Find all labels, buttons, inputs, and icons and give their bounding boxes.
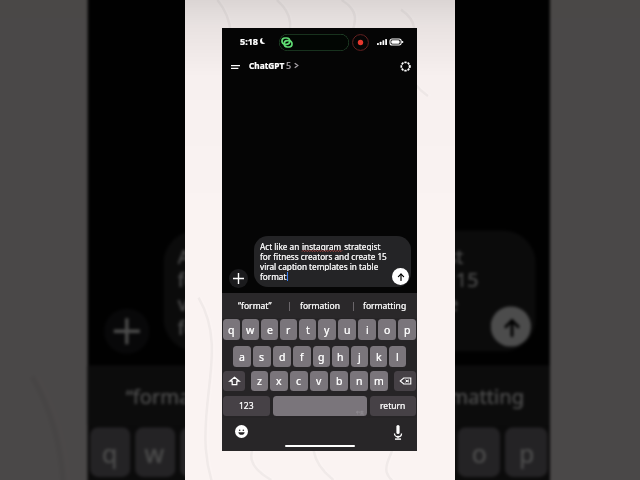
staticText: instagram bbox=[277, 242, 372, 266]
staticText: formation bbox=[273, 382, 367, 411]
button[interactable]: Menu bbox=[226, 58, 244, 76]
button[interactable]: i bbox=[358, 319, 376, 340]
button[interactable]: formatting bbox=[396, 366, 550, 425]
button[interactable]: “format” bbox=[222, 293, 287, 318]
button[interactable]: f bbox=[293, 346, 311, 367]
button[interactable]: Act like an bbox=[164, 230, 536, 351]
button[interactable]: 123 bbox=[223, 396, 270, 416]
button[interactable]: Send bbox=[491, 306, 531, 347]
staticText: formatting bbox=[363, 300, 407, 312]
staticText: formatting bbox=[422, 382, 526, 411]
staticText: 123 bbox=[239, 400, 254, 412]
staticText: q bbox=[228, 323, 235, 337]
button[interactable]: w bbox=[135, 427, 175, 477]
staticText: j bbox=[358, 350, 361, 364]
button[interactable]: o bbox=[378, 319, 396, 340]
staticText: r bbox=[286, 323, 291, 337]
staticText: q bbox=[102, 437, 118, 470]
button[interactable]: formation bbox=[242, 366, 396, 425]
staticText: m bbox=[374, 374, 384, 388]
button[interactable]: r bbox=[225, 427, 265, 477]
staticText: Act like an bbox=[260, 241, 302, 251]
button[interactable]: s bbox=[253, 346, 271, 367]
staticText: w bbox=[246, 323, 255, 337]
staticText: e bbox=[267, 323, 273, 337]
staticText: r bbox=[239, 437, 251, 470]
staticText: 中英 bbox=[356, 410, 364, 415]
button[interactable]: u bbox=[338, 319, 356, 340]
button[interactable]: o bbox=[457, 427, 500, 477]
button[interactable]: Emoji bbox=[235, 425, 248, 438]
button[interactable]: Temporary chat bbox=[396, 57, 414, 75]
button[interactable]: t bbox=[270, 427, 310, 477]
staticText: v bbox=[316, 374, 322, 388]
staticText: e bbox=[194, 437, 209, 470]
staticText: y bbox=[329, 437, 344, 470]
button[interactable]: p bbox=[398, 319, 416, 340]
button[interactable]: Delete bbox=[394, 371, 416, 391]
button[interactable]: r bbox=[280, 319, 297, 340]
button[interactable]: e bbox=[261, 319, 278, 340]
staticText: “format” bbox=[126, 382, 206, 411]
staticText: “format” bbox=[238, 300, 272, 312]
button[interactable]: h bbox=[332, 346, 349, 367]
staticText: g bbox=[318, 350, 325, 364]
button[interactable]: i bbox=[410, 427, 453, 477]
staticText: ChatGPT bbox=[249, 60, 285, 71]
button[interactable]: a bbox=[233, 346, 251, 367]
button[interactable]: y bbox=[318, 319, 336, 340]
button[interactable]: return bbox=[370, 396, 416, 416]
button[interactable]: g bbox=[313, 346, 330, 367]
staticText: z bbox=[257, 374, 262, 388]
button[interactable]: x bbox=[270, 371, 288, 391]
staticText: viral caption templates in table bbox=[178, 290, 460, 313]
button[interactable]: d bbox=[273, 346, 291, 367]
button[interactable]: Space bbox=[273, 396, 367, 416]
button[interactable]: b bbox=[330, 371, 348, 391]
staticText: for fitness creators and create 15 bbox=[260, 251, 387, 261]
button[interactable]: Shift bbox=[223, 371, 245, 391]
staticText: l bbox=[396, 350, 399, 364]
button[interactable]: Send bbox=[392, 268, 409, 285]
button[interactable]: formation bbox=[287, 293, 352, 318]
staticText: o bbox=[472, 437, 488, 470]
button[interactable]: q bbox=[90, 427, 130, 477]
button[interactable]: Dictate bbox=[394, 425, 402, 440]
staticText: instagram bbox=[302, 241, 342, 251]
staticText: t bbox=[306, 323, 310, 337]
staticText: k bbox=[376, 350, 382, 364]
staticText: a bbox=[239, 350, 245, 364]
staticText: n bbox=[356, 374, 363, 388]
button[interactable]: v bbox=[310, 371, 328, 391]
button[interactable]: formatting bbox=[352, 293, 417, 318]
staticText: y bbox=[324, 323, 330, 337]
button[interactable]: m bbox=[370, 371, 388, 391]
button[interactable]: k bbox=[370, 346, 387, 367]
button[interactable]: z bbox=[251, 371, 268, 391]
button[interactable]: u bbox=[363, 427, 405, 477]
staticText: t bbox=[287, 437, 296, 470]
staticText: u bbox=[344, 323, 351, 337]
staticText: 5 bbox=[286, 59, 292, 71]
staticText: format bbox=[260, 271, 287, 281]
staticText: c bbox=[296, 374, 302, 388]
button[interactable]: ChatGPT bbox=[249, 52, 300, 78]
staticText: u bbox=[377, 437, 393, 470]
button[interactable]: j bbox=[351, 346, 368, 367]
button[interactable]: “format” bbox=[88, 366, 242, 425]
button[interactable]: y bbox=[315, 427, 358, 477]
button[interactable]: w bbox=[242, 319, 259, 340]
staticText: w bbox=[145, 437, 166, 470]
staticText: strategist bbox=[342, 241, 381, 251]
button[interactable]: q bbox=[223, 319, 240, 340]
button[interactable]: Add attachment bbox=[104, 309, 149, 354]
button[interactable]: l bbox=[389, 346, 406, 367]
button[interactable]: Add attachment bbox=[229, 269, 248, 288]
button[interactable]: n bbox=[350, 371, 368, 391]
button[interactable]: c bbox=[290, 371, 308, 391]
button[interactable]: e bbox=[180, 427, 220, 477]
button[interactable]: Act like an bbox=[254, 236, 411, 287]
button[interactable]: t bbox=[299, 319, 316, 340]
button[interactable]: p bbox=[505, 427, 548, 477]
